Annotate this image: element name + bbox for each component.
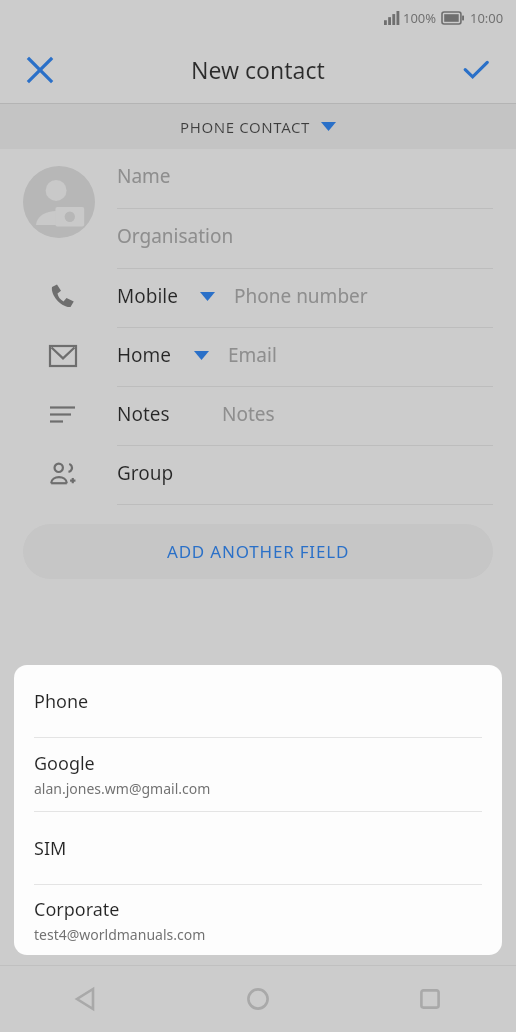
staticText: Notes [117, 401, 170, 427]
staticText: Mobile [117, 283, 178, 309]
staticText: Corporate [34, 897, 120, 922]
staticText: Name [117, 163, 171, 189]
button[interactable]: Cancel [18, 48, 62, 92]
staticText: test4@worldmanuals.com [34, 925, 206, 944]
button[interactable]: Phone [14, 665, 502, 737]
button[interactable]: ADD ANOTHER FIELD [23, 524, 493, 579]
staticText: 100% [403, 9, 437, 27]
button[interactable]: Google [14, 738, 502, 811]
button[interactable]: Organisation [117, 209, 493, 269]
button[interactable]: Home [172, 966, 344, 1032]
staticText: alan.jones.wm@gmail.com [34, 779, 211, 798]
button[interactable]: Name [117, 149, 493, 209]
button[interactable]: SIM [14, 812, 502, 884]
button[interactable]: Home [0, 328, 516, 387]
staticText: Group [117, 460, 174, 486]
button[interactable]: Corporate [14, 885, 502, 955]
button[interactable]: Notes [0, 387, 516, 446]
staticText: Notes [222, 401, 275, 427]
staticText: Phone [34, 689, 89, 714]
staticText: ADD ANOTHER FIELD [167, 540, 350, 563]
button[interactable]: Recent apps [344, 966, 516, 1032]
button[interactable]: PHONE CONTACT [0, 104, 516, 149]
staticText: New contact [191, 54, 325, 85]
staticText: SIM [34, 836, 67, 861]
button[interactable]: Save [454, 48, 498, 92]
staticText: Google [34, 751, 95, 776]
staticText: PHONE CONTACT [180, 117, 311, 137]
button[interactable]: Add photo [23, 166, 95, 238]
staticText: Email [228, 342, 277, 368]
staticText: 10:00 [470, 9, 504, 27]
staticText: Organisation [117, 223, 234, 249]
button[interactable]: Back [0, 966, 172, 1032]
staticText: Phone number [234, 283, 368, 309]
button[interactable]: Mobile [0, 269, 516, 328]
staticText: Home [117, 342, 172, 368]
button[interactable]: Group [0, 446, 516, 505]
